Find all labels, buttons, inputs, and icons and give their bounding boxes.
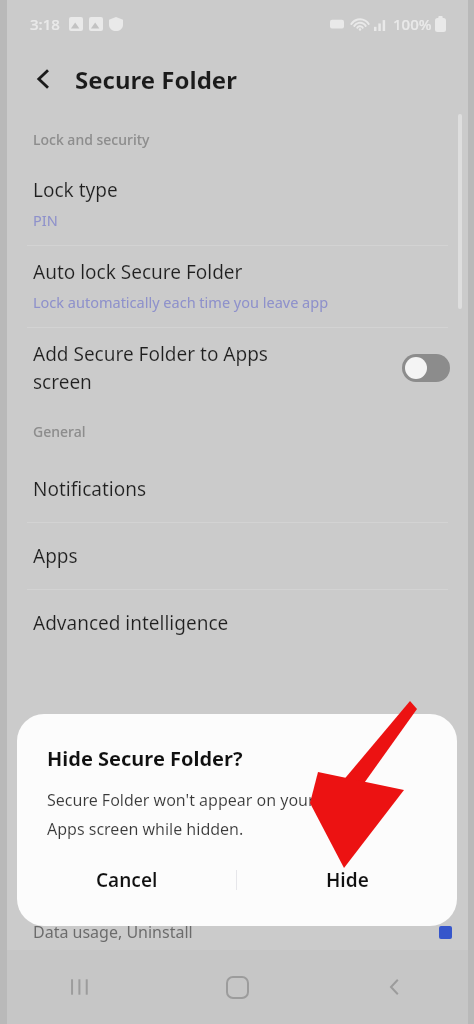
button[interactable]: Auto lock Secure Folder [0, 246, 474, 327]
staticText: General [33, 422, 86, 441]
staticText: Data usage, Uninstall [33, 921, 193, 943]
staticText: Lock and security [33, 130, 150, 149]
staticText: Notifications [33, 476, 147, 502]
staticText: PIN [33, 210, 58, 230]
staticText: Lock automatically each time you leave a… [33, 292, 329, 312]
staticText: 100% [393, 14, 432, 34]
staticText: Cancel [96, 867, 158, 893]
staticText: Advanced intelligence [33, 610, 229, 636]
button[interactable]: Apps [0, 523, 474, 589]
button[interactable]: Lock type [0, 164, 474, 245]
staticText: Hide Secure Folder? [47, 745, 243, 772]
button[interactable]: Notifications [0, 456, 474, 522]
staticText: Add Secure Folder to Apps screen [33, 341, 268, 395]
staticText: Apps [33, 543, 78, 569]
staticText: Secure Folder [75, 63, 237, 96]
staticText: Lock type [33, 177, 118, 203]
staticText: Hide [326, 867, 369, 893]
button[interactable]: Hide [237, 848, 457, 912]
button[interactable]: Add Secure Folder to Apps screen [402, 354, 450, 382]
staticText: Auto lock Secure Folder [33, 259, 243, 285]
button[interactable]: Recent apps [0, 950, 158, 1024]
staticText: Secure Folder won't appear on your Home … [47, 789, 385, 839]
button[interactable]: Advanced intelligence [0, 590, 474, 656]
button[interactable]: Back [26, 61, 62, 97]
staticText: 3:18 [30, 14, 60, 34]
button[interactable]: Cancel [17, 848, 236, 912]
button[interactable]: Add Secure Folder to Apps screen [0, 328, 474, 408]
button[interactable]: Home [158, 950, 316, 1024]
button[interactable]: Back [316, 950, 474, 1024]
